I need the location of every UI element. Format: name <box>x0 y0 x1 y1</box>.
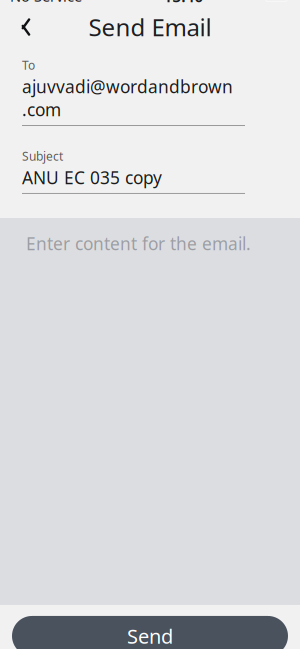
staticText: Send Email <box>88 11 211 43</box>
staticText: To <box>22 57 35 73</box>
staticText: 15:40 <box>163 0 203 7</box>
button[interactable]: Send <box>0 605 300 649</box>
staticText: Enter content for the email. <box>26 232 251 255</box>
staticText: ANU EC 035 copy <box>22 166 162 189</box>
staticText: Subject <box>22 148 63 164</box>
staticText: ajuvvadi@wordandbrown.com <box>22 75 233 121</box>
staticText: No Service <box>10 0 82 6</box>
button[interactable]: Back <box>6 10 40 44</box>
staticText: Send <box>127 623 173 649</box>
